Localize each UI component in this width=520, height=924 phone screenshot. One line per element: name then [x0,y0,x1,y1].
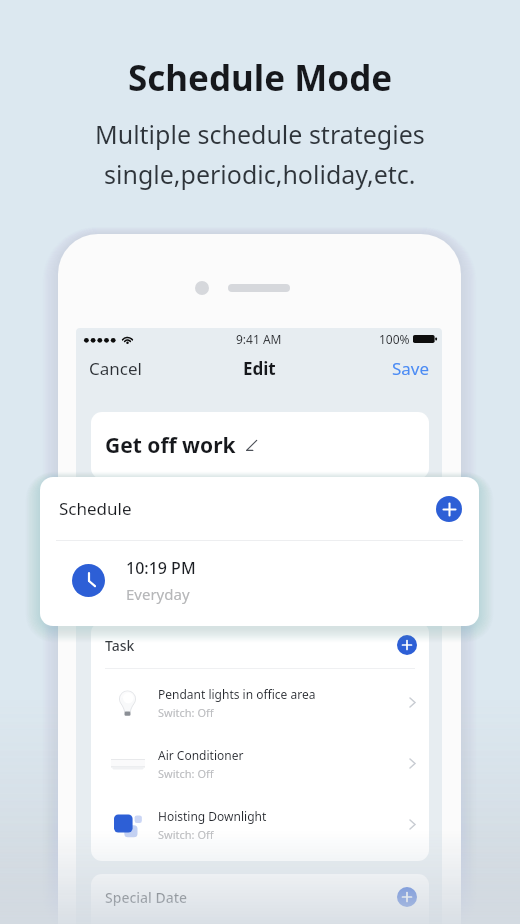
staticText: Schedule Mode [128,54,393,102]
button[interactable]: Special Date [91,874,429,924]
staticText: Pendant lights in office area [158,686,316,702]
staticText: Air Conditioner [158,747,244,763]
button[interactable]: Air Conditioner [107,733,416,794]
button[interactable]: Add task [397,635,417,655]
button[interactable]: 10:19 PM [72,540,463,621]
button[interactable]: Get off work [91,412,429,479]
staticText: Hoisting Downlight [158,808,267,824]
staticText: Edit [243,357,276,380]
staticText: Multiple schedule strategies [95,117,425,151]
staticText: Switch: Off [158,766,214,781]
staticText: Schedule [59,497,132,520]
staticText: Special Date [105,888,188,907]
staticText: 100% [379,331,410,347]
button[interactable]: Pendant lights in office area [107,672,416,733]
button[interactable]: Cancel [89,357,142,380]
staticText: Switch: Off [158,827,214,842]
button[interactable]: Hoisting Downlight [107,794,416,855]
staticText: single,periodic,holiday,etc. [104,157,416,191]
staticText: Task [105,636,135,655]
staticText: 9:41 AM [236,331,282,347]
button[interactable]: Save [392,357,430,380]
staticText: 10:19 PM [126,557,196,579]
button[interactable]: Add schedule [436,496,462,522]
staticText: Get off work [105,431,236,460]
staticText: Cancel [89,357,142,380]
staticText: Everyday [126,584,190,604]
staticText: Save [392,357,430,380]
staticText: Switch: Off [158,705,214,720]
